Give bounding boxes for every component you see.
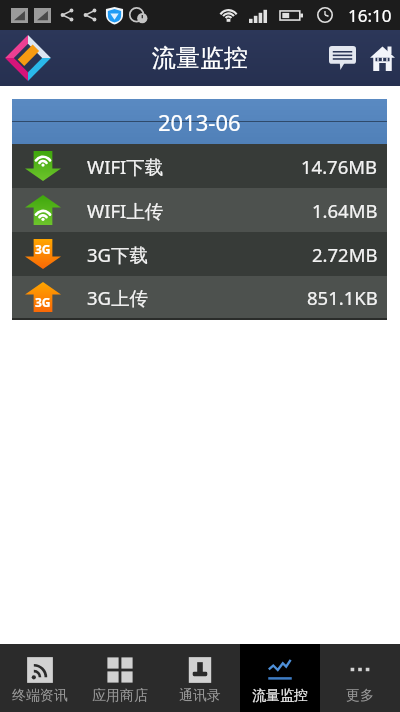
staticText: 3G上传 <box>87 285 149 310</box>
staticText: WIFI下载 <box>87 154 164 179</box>
staticText: WIFI上传 <box>87 198 164 223</box>
button[interactable]: 终端资讯 <box>0 644 80 712</box>
button[interactable]: 3G <box>12 232 387 276</box>
staticText: 通讯录 <box>179 687 221 705</box>
staticText: 851.1KB <box>307 285 378 310</box>
button[interactable]: Messages <box>326 38 359 78</box>
button[interactable]: Logo <box>2 32 54 84</box>
button[interactable]: Home <box>367 38 397 78</box>
button[interactable]: 3G <box>12 276 387 318</box>
button[interactable]: WIFI上传 <box>12 188 387 232</box>
staticText: 3G <box>35 294 51 310</box>
staticText: 更多 <box>346 687 374 705</box>
staticText: 3G下载 <box>87 242 149 267</box>
staticText: 1.64MB <box>312 198 378 223</box>
staticText: 流量监控 <box>152 43 248 73</box>
staticText: 应用商店 <box>92 687 148 705</box>
button[interactable]: 通讯录 <box>160 644 240 712</box>
staticText: 终端资讯 <box>12 687 68 705</box>
staticText: 3G <box>35 241 51 257</box>
staticText: 16:10 <box>348 4 392 27</box>
staticText: 14.76MB <box>301 154 378 179</box>
staticText: 2.72MB <box>312 242 378 267</box>
staticText: 流量监控 <box>252 687 308 705</box>
button[interactable]: 应用商店 <box>80 644 160 712</box>
staticText: 2013-06 <box>158 107 241 137</box>
button[interactable]: 流量监控 <box>240 644 320 712</box>
button[interactable]: WIFI下载 <box>12 144 387 188</box>
button[interactable]: 更多 <box>320 644 400 712</box>
